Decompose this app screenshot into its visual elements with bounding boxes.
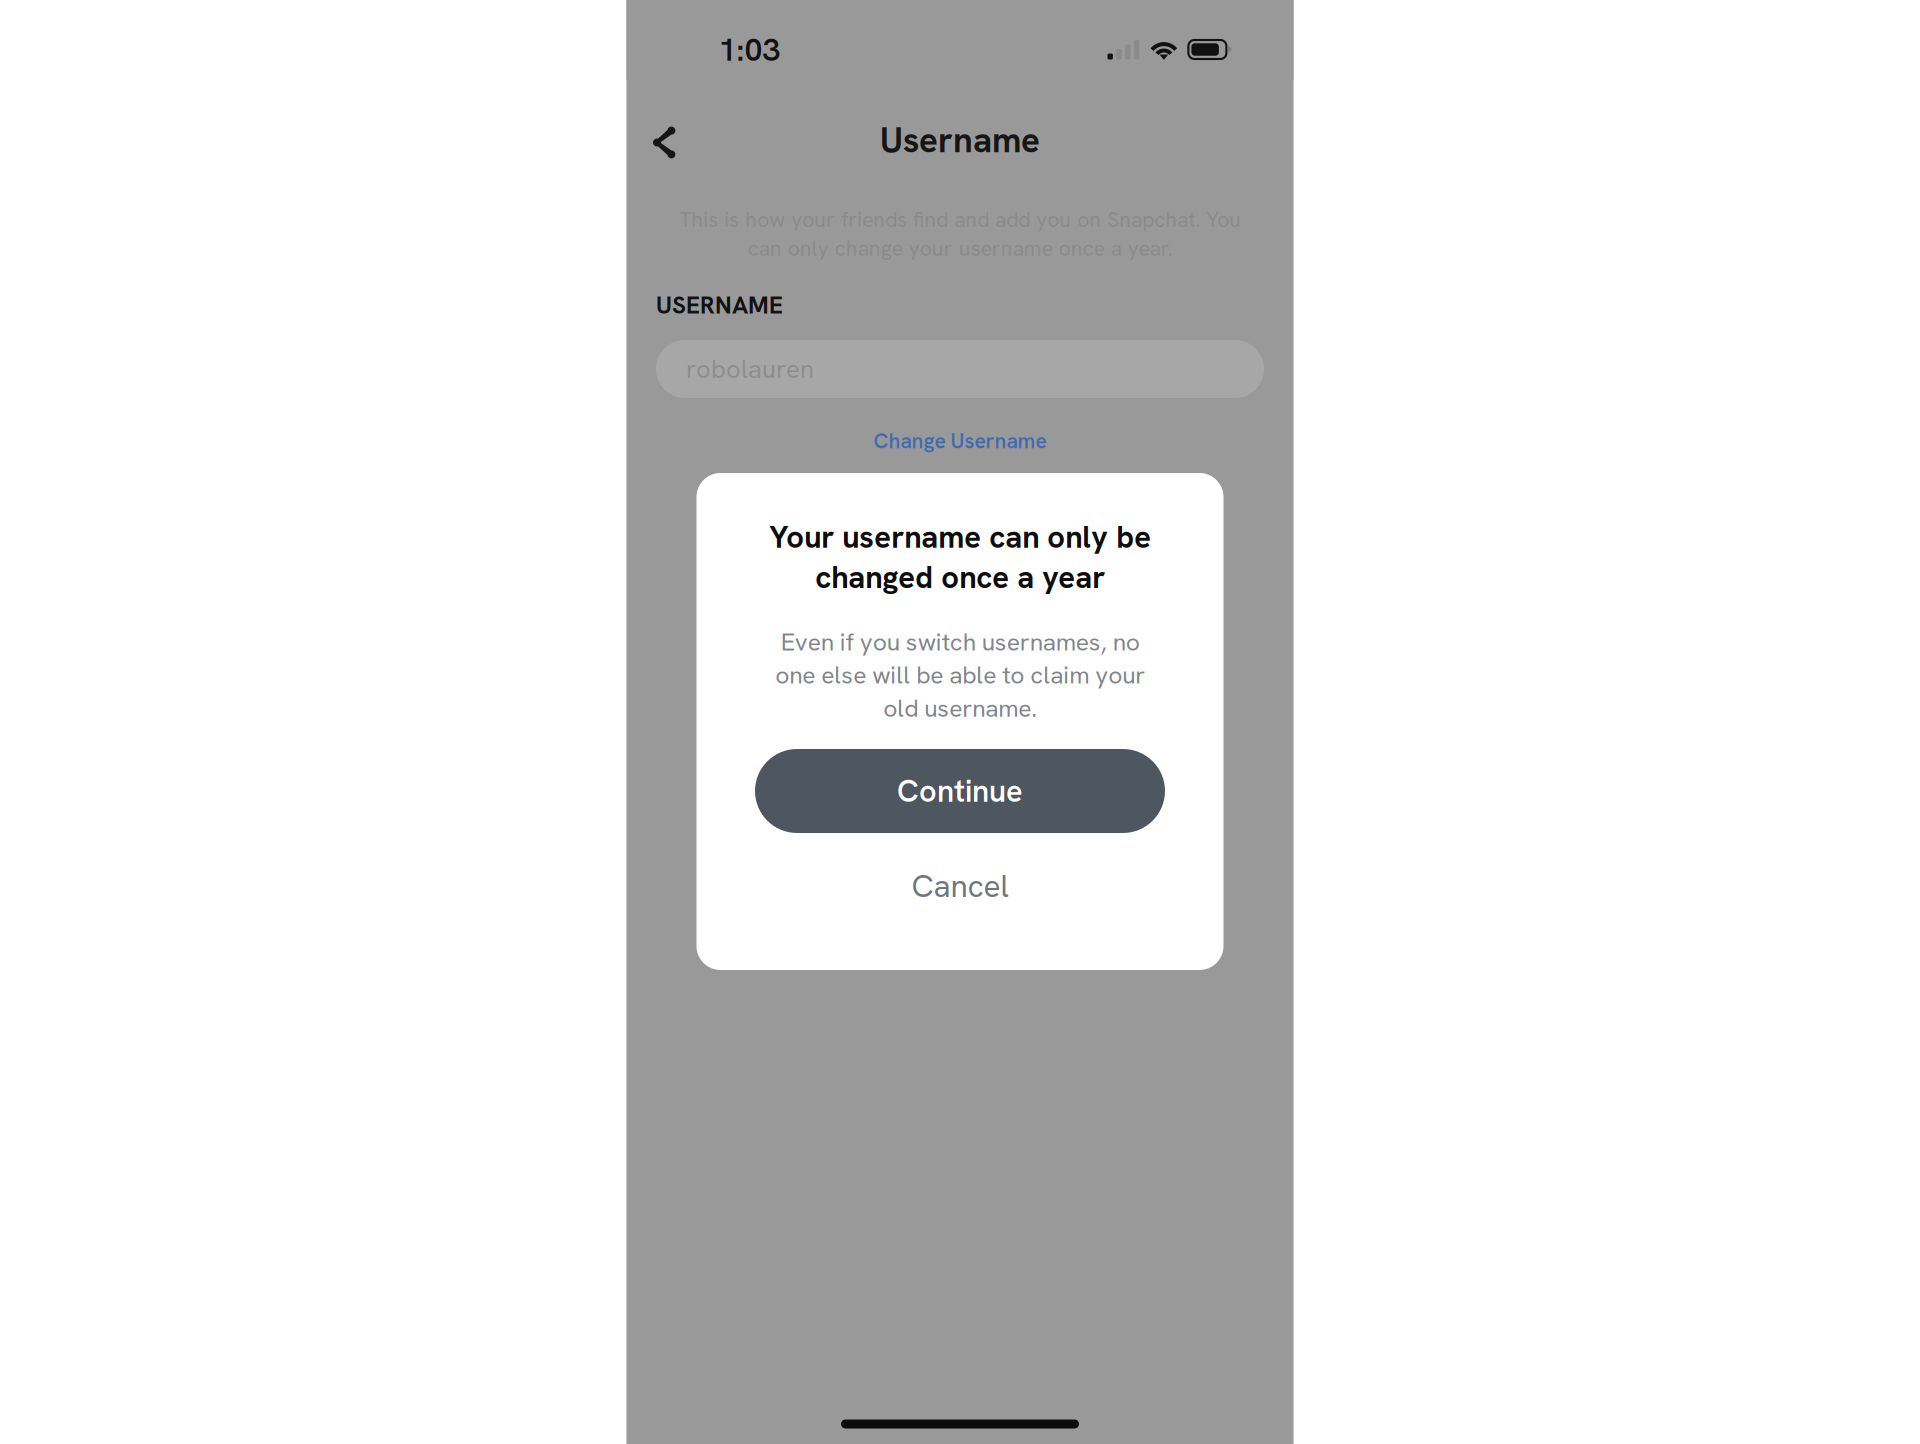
staticText: This is how your friends find and add yo… — [679, 206, 1241, 262]
button[interactable]: Change Username — [850, 419, 1070, 463]
staticText: Cancel — [911, 865, 1008, 907]
staticText: robolauren — [686, 352, 814, 386]
staticText: Change Username — [873, 427, 1046, 455]
button[interactable]: Cancel — [755, 856, 1165, 916]
staticText: Your username can only be changed once a… — [769, 517, 1151, 597]
staticText: Username — [880, 117, 1040, 163]
button[interactable]: Back — [628, 107, 698, 177]
staticText: Even if you switch usernames, no one els… — [775, 626, 1145, 724]
staticText: Continue — [897, 771, 1023, 811]
button[interactable]: Continue — [755, 749, 1165, 833]
staticText: USERNAME — [656, 289, 783, 321]
staticText: 1:03 — [718, 29, 780, 70]
